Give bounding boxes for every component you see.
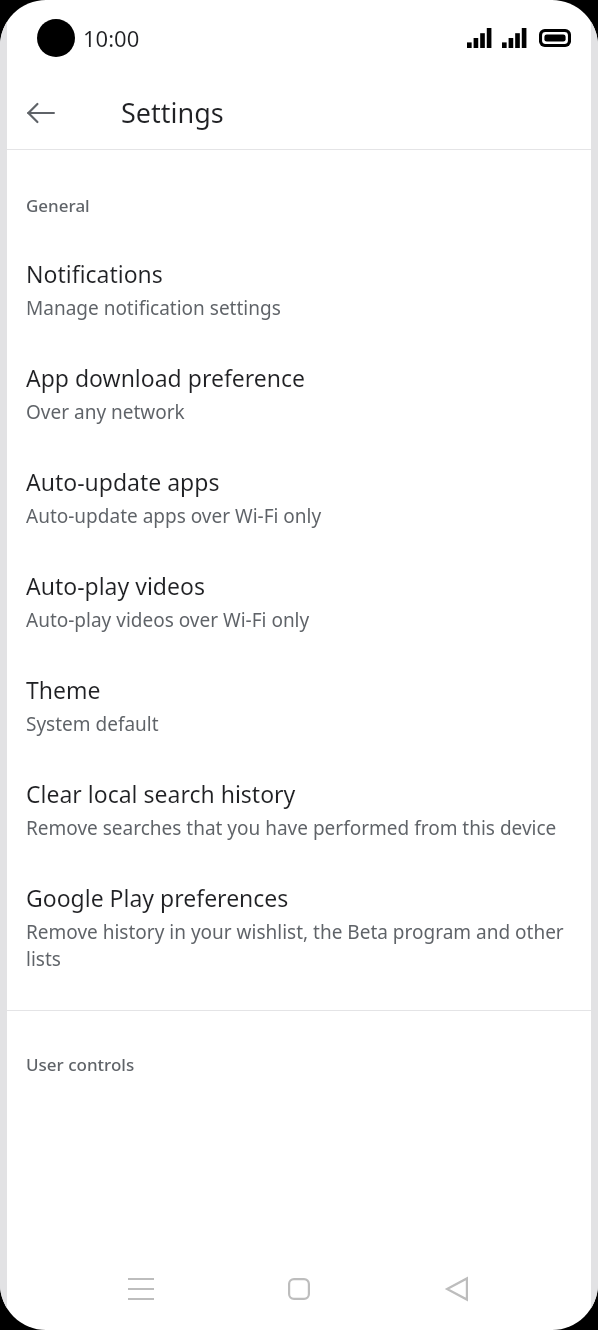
- staticText: Auto-update apps over Wi-Fi only: [26, 503, 322, 529]
- staticText: Auto-update apps: [26, 466, 220, 497]
- button[interactable]: Auto-play videos: [0, 570, 598, 633]
- staticText: Remove history in your wishlist, the Bet…: [26, 919, 574, 972]
- staticText: Clear local search history: [26, 778, 296, 809]
- staticText: Over any network: [26, 399, 185, 425]
- staticText: Manage notification settings: [26, 295, 281, 321]
- staticText: Settings: [121, 94, 224, 131]
- button[interactable]: Back: [17, 89, 65, 137]
- button[interactable]: Recent apps: [113, 1261, 169, 1317]
- button[interactable]: Google Play preferences: [0, 882, 598, 972]
- staticText: Notifications: [26, 258, 163, 289]
- staticText: Auto-play videos: [26, 570, 205, 601]
- button[interactable]: App download preference: [0, 362, 598, 425]
- button[interactable]: Back: [429, 1261, 485, 1317]
- staticText: User controls: [26, 1053, 135, 1076]
- staticText: Auto-play videos over Wi-Fi only: [26, 607, 310, 633]
- staticText: Theme: [26, 674, 101, 705]
- staticText: System default: [26, 711, 159, 737]
- button[interactable]: Notifications: [0, 258, 598, 321]
- button[interactable]: Clear local search history: [0, 778, 598, 841]
- staticText: 10:00: [83, 23, 140, 53]
- button[interactable]: Home: [271, 1261, 327, 1317]
- button[interactable]: Theme: [0, 674, 598, 737]
- staticText: Remove searches that you have performed …: [26, 815, 557, 841]
- staticText: General: [26, 194, 90, 217]
- staticText: App download preference: [26, 362, 306, 393]
- button[interactable]: Auto-update apps: [0, 466, 598, 529]
- staticText: Google Play preferences: [26, 882, 289, 913]
